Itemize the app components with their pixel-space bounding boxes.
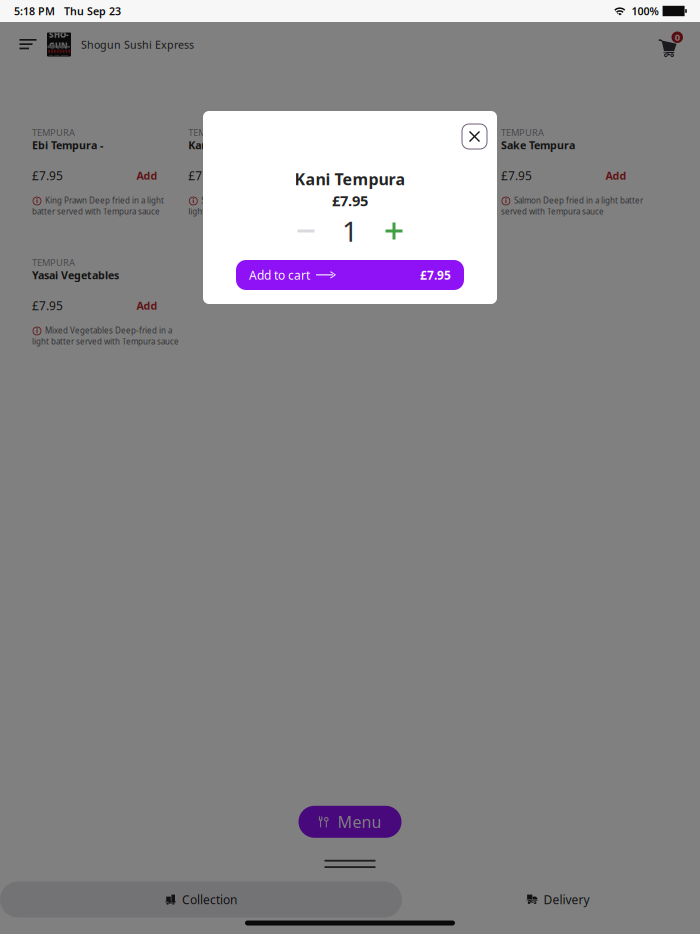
staticText: £7.95: [345, 167, 376, 183]
button[interactable]: Decrease quantity: [283, 218, 329, 244]
button[interactable]: Add: [119, 165, 175, 186]
staticText: TEMPURA: [32, 126, 75, 139]
staticText: £7.95: [332, 191, 368, 210]
staticText: Add: [605, 168, 626, 183]
button[interactable]: Add: [588, 165, 644, 186]
staticText: 5:18 PM: [14, 4, 55, 18]
staticText: Calamari Deep fried in a light batter: [358, 190, 466, 211]
staticText: TEMPURA: [501, 126, 544, 139]
staticText: 1: [342, 212, 358, 250]
staticText: Delivery: [543, 891, 589, 907]
staticText: Add: [136, 298, 157, 313]
button[interactable]: Menu: [298, 806, 401, 838]
staticText: £7.95: [420, 267, 451, 283]
staticText: Collection: [182, 891, 237, 907]
staticText: Thu Sep 23: [64, 4, 121, 18]
staticText: Yasai Vegetables: [32, 268, 119, 282]
button[interactable]: Add: [119, 295, 175, 316]
staticText: £7.95: [188, 167, 219, 183]
button[interactable]: Delivery: [498, 881, 618, 917]
staticText: Add: [136, 168, 157, 183]
button[interactable]: Add to cart: [236, 260, 464, 290]
staticText: £7.95: [32, 167, 63, 183]
staticText: Menu: [337, 811, 381, 832]
button[interactable]: Open menu: [9, 23, 47, 65]
staticText: served with Tempura sauce: [501, 206, 604, 217]
staticText: Shogun Sushi Express: [81, 37, 194, 52]
staticText: Sake Tempura: [501, 138, 575, 152]
button[interactable]: Collection: [0, 881, 402, 917]
staticText: King Prawn Deep fried in a light: [45, 195, 164, 206]
staticText: Ebi Tempura -: [32, 138, 103, 152]
button[interactable]: Add: [275, 165, 331, 186]
staticText: £7.95: [501, 167, 532, 183]
button[interactable]: Cart, 0 items: [656, 28, 686, 60]
staticText: served with Tempura sauce: [345, 206, 448, 217]
staticText: £7.95: [32, 297, 63, 313]
staticText: TEMPURA: [188, 126, 231, 139]
staticText: SHOGUN: [49, 29, 69, 51]
staticText: light batter served with Tempura: [188, 206, 311, 217]
button[interactable]: Increase quantity: [371, 218, 417, 244]
staticText: Mixed Vegetables Deep-fried in a: [45, 325, 172, 336]
staticText: Add: [293, 168, 314, 183]
staticText: batter served with Tempura sauce: [32, 206, 160, 217]
staticText: light batter served with Tempura sauce: [32, 336, 179, 347]
staticText: Soft Shell Crab Deep fried in a: [201, 195, 313, 206]
staticText: Add to cart: [249, 267, 310, 283]
staticText: Salmon Deep fried in a light batter: [514, 195, 643, 206]
staticText: Kani Tempura: [188, 138, 260, 152]
button[interactable]: Close: [462, 124, 487, 149]
staticText: Kani Tempura: [294, 168, 405, 190]
staticText: 100%: [632, 4, 659, 18]
staticText: TEMPURA: [32, 256, 75, 269]
staticText: 0: [675, 31, 680, 43]
